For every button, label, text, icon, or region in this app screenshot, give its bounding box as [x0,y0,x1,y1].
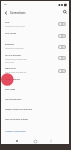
button[interactable]: Bluetooth switch [58,44,68,50]
staticText: NFC and payment [5,54,22,57]
staticText: Make contactless payments with [5,58,27,60]
staticText: Wi-Fi [5,21,10,24]
staticText: Connected to HOME_WIFI_5G [5,25,25,27]
button[interactable]: Flight mode [1,67,69,78]
button[interactable]: More connection settings [1,118,69,126]
button[interactable]: Mobile Hotspot and Tethering [1,108,69,116]
staticText: Mobile networks [5,78,21,81]
button[interactable]: NFC and payment switch [58,55,68,61]
button[interactable]: Recents [13,137,21,145]
staticText: Data usage [5,88,16,91]
button[interactable]: Bluetooth [1,43,69,54]
staticText: Mobile Hotspot and Tethering [5,108,32,111]
button[interactable]: Wi-Fi switch [58,21,68,27]
staticText: Connections [10,11,26,14]
button[interactable]: Back [47,137,55,145]
button[interactable]: Home [31,137,39,145]
button[interactable]: Wi-Fi [1,21,69,32]
button[interactable]: Looking for something else? [1,127,69,135]
button[interactable]: NFC and payment [1,54,69,68]
staticText: your NFC tag [5,61,14,63]
button[interactable]: Flight mode switch [58,68,68,74]
staticText: Turn off calling, messaging and [5,71,27,73]
button[interactable]: SIM card manager [1,98,69,106]
button[interactable]: Back [2,9,9,16]
staticText: Wi-Fi Calling [5,32,17,35]
button[interactable]: Data usage [1,88,69,96]
button[interactable]: Wi-Fi Calling switch [58,33,68,39]
staticText: Bluetooth [5,43,14,46]
button[interactable]: Wi-Fi Calling [1,32,69,40]
staticText: 9:41 [4,3,8,5]
staticText: SIM card manager [5,98,22,101]
button[interactable]: Search [61,8,69,16]
staticText: More connection settings [5,118,28,121]
staticText: Looking for something else? [5,130,26,132]
button[interactable]: Mobile networks [1,78,69,86]
staticText: Connected to Galaxy Buds2 [5,47,24,49]
staticText: Flight mode [5,67,16,70]
